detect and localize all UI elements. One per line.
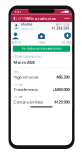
- staticText: Transferencia: [13, 87, 37, 92]
- staticText: Mis productos: [27, 16, 56, 21]
- staticText: $1.284.500: [51, 27, 69, 30]
- staticText: Últimos movimientos: [13, 55, 41, 58]
- staticText: Hoy: [13, 70, 18, 74]
- button[interactable]: More options: [62, 15, 72, 22]
- staticText: Cuentas: [16, 17, 27, 20]
- staticText: +$450.000: [52, 87, 69, 92]
- staticText: Ver todos mis movimientos: [21, 47, 61, 50]
- staticText: Marzo 2024: [13, 60, 34, 65]
- staticText: Recargar: [62, 41, 73, 44]
- staticText: Cuenta de ahorros: [21, 19, 37, 26]
- staticText: 0000 07 1234 56: [21, 27, 34, 34]
- button[interactable]: Ver todos mis movimientos: [13, 46, 70, 52]
- staticText: -$129.900: [53, 99, 69, 105]
- staticText: 9:41: [14, 10, 21, 14]
- staticText: Pagar: [38, 41, 45, 44]
- button[interactable]: Recargar: [58, 32, 76, 45]
- button[interactable]: Transferir: [6, 32, 24, 45]
- staticText: Pago servicios: [13, 74, 38, 80]
- button[interactable]: Pagar: [32, 32, 50, 45]
- staticText: Transferir: [9, 41, 21, 44]
- staticText: Compra en línea: [13, 99, 42, 105]
- button[interactable]: Cuentas: [11, 15, 29, 22]
- staticText: Saldo total: [55, 23, 69, 26]
- staticText: -$86.200: [55, 74, 69, 80]
- staticText: 12 mar: [13, 83, 22, 86]
- staticText: 10 mar: [13, 95, 22, 99]
